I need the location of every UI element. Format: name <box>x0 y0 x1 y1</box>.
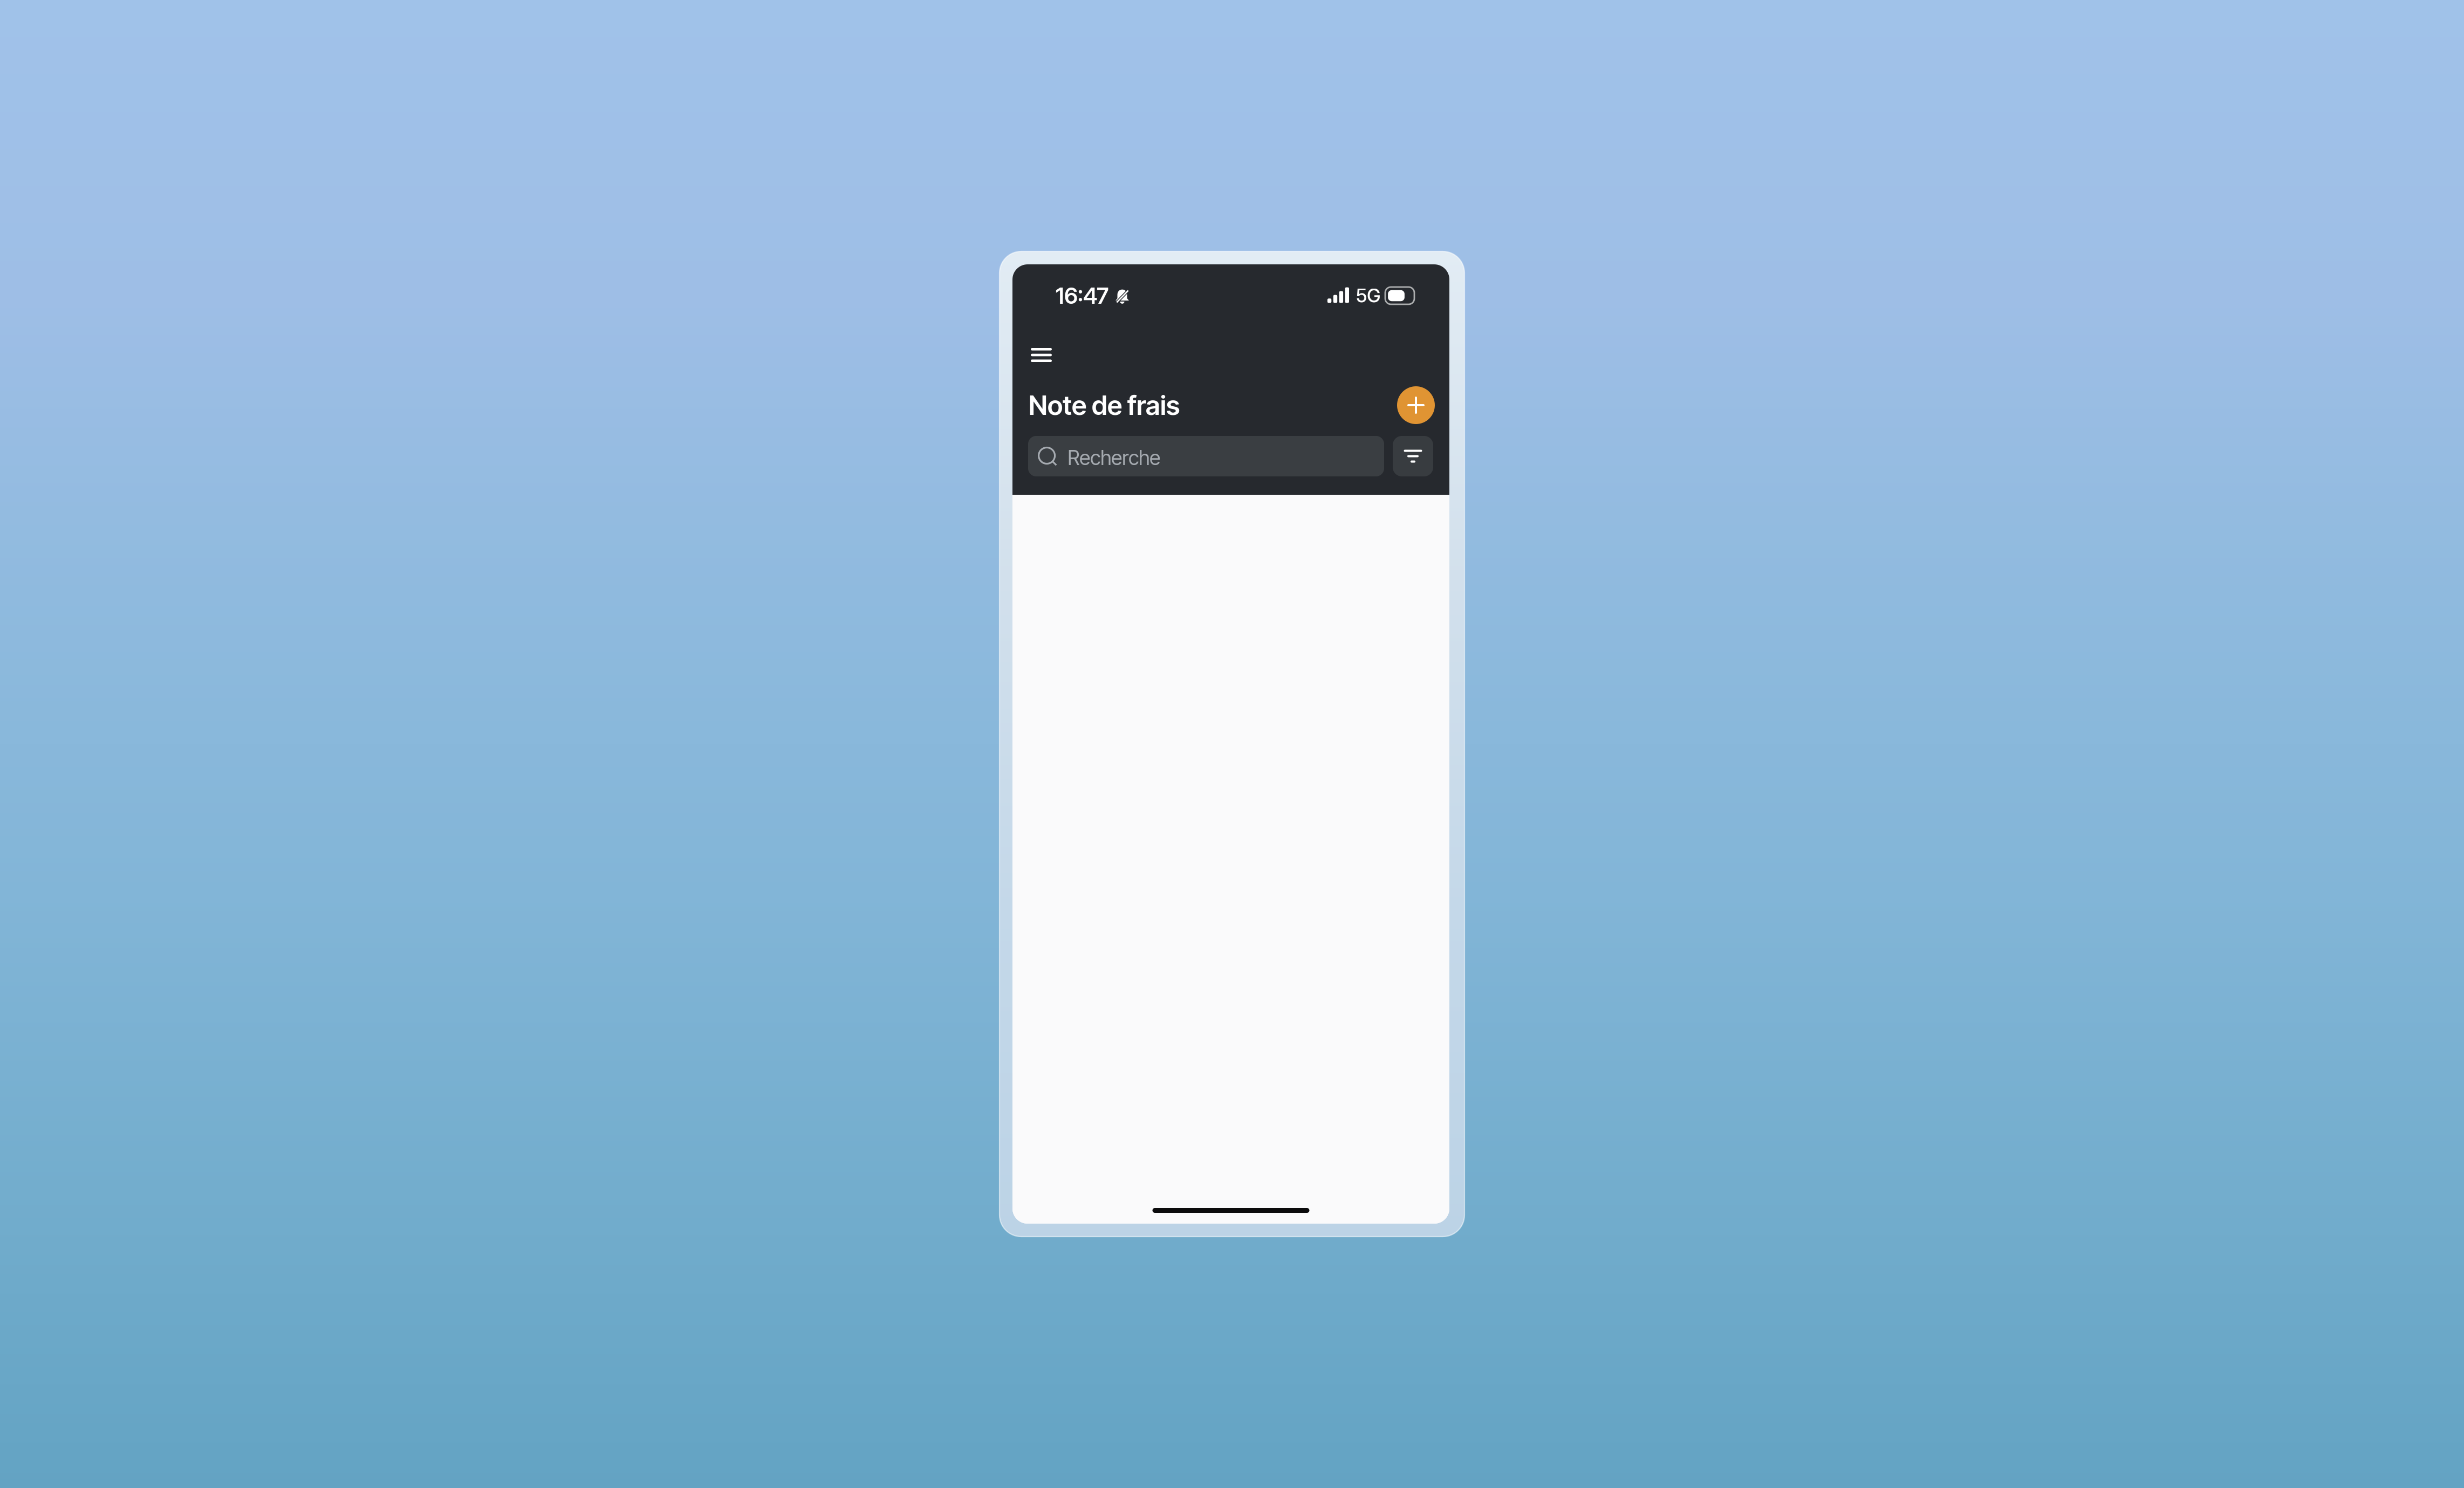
button[interactable]: Recherche <box>1028 436 1384 476</box>
button[interactable]: Ajouter une note de frais <box>1397 386 1435 424</box>
button[interactable]: Filtrer <box>1393 436 1433 476</box>
staticText: Note de frais <box>1029 389 1180 421</box>
staticText: 16:47 <box>1056 282 1108 309</box>
button[interactable]: Menu <box>1012 340 1064 370</box>
staticText: Recherche <box>1068 446 1160 470</box>
staticText: 5G <box>1356 284 1381 307</box>
